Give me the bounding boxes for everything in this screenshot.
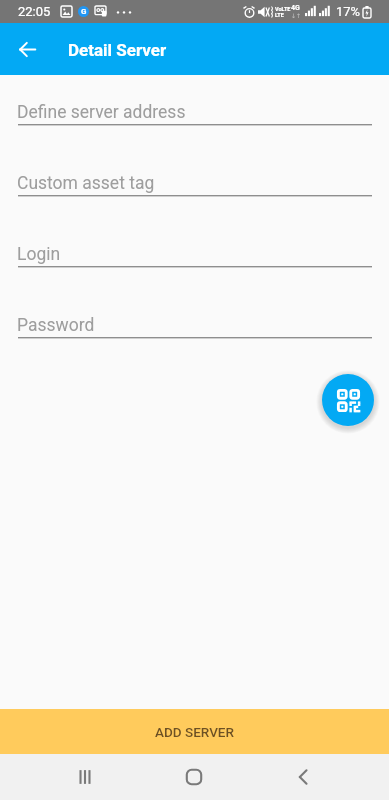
staticText: G — [81, 7, 87, 16]
button[interactable]: ADD SERVER — [0, 709, 389, 754]
button[interactable]: Recents — [61, 754, 109, 800]
staticText: ADD SERVER — [155, 724, 234, 740]
button[interactable]: Scan QR code — [322, 374, 374, 426]
staticText: Password — [17, 315, 95, 336]
staticText: 22:05 — [18, 4, 51, 19]
staticText: 17% — [336, 4, 361, 19]
staticText: 4G — [291, 4, 300, 12]
staticText: Login — [17, 244, 61, 265]
button[interactable]: Back — [11, 33, 43, 65]
staticText: Define server address — [17, 102, 186, 123]
staticText: Detail Server — [68, 40, 167, 60]
button[interactable]: Back — [279, 754, 327, 800]
staticText: Custom asset tag — [17, 173, 155, 194]
staticText: ↓↑ — [291, 12, 302, 19]
button[interactable]: Home — [170, 754, 218, 800]
staticText: LTE — [275, 12, 284, 18]
staticText: VoLTE — [275, 6, 291, 12]
